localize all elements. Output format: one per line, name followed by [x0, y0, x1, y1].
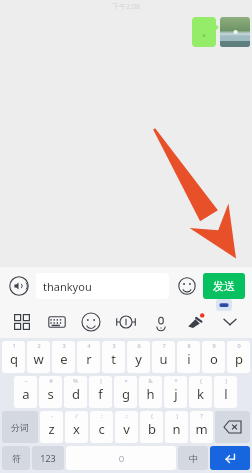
staticText: -	[51, 412, 53, 419]
button[interactable]: ?	[190, 411, 213, 443]
staticText: 9	[212, 342, 216, 349]
button[interactable]: 9	[202, 341, 225, 373]
button[interactable]: Photo message	[220, 17, 250, 47]
button[interactable]: Emoji	[175, 274, 199, 298]
staticText: |	[99, 377, 103, 384]
staticText: (	[200, 377, 202, 384]
staticText: #	[49, 377, 53, 384]
staticText: h	[146, 385, 155, 403]
button[interactable]: ０	[66, 446, 176, 470]
button[interactable]: Text tools	[116, 312, 136, 332]
staticText: 7	[162, 342, 166, 349]
staticText: l	[224, 385, 228, 403]
staticText: y	[135, 350, 142, 368]
button[interactable]: Voice input	[7, 274, 31, 298]
button[interactable]: 符	[2, 446, 30, 470]
button[interactable]: ×	[114, 376, 137, 408]
staticText: i	[187, 350, 191, 368]
button[interactable]: Hide keyboard	[220, 312, 240, 332]
staticText: a	[22, 385, 30, 403]
button[interactable]: Panel	[12, 312, 32, 332]
button[interactable]: 1	[2, 341, 25, 373]
staticText: ×	[124, 377, 128, 384]
button[interactable]: /	[65, 411, 88, 443]
staticText: )	[176, 412, 178, 419]
staticText: r	[86, 350, 92, 368]
staticText: k	[197, 385, 204, 403]
button[interactable]: 0	[227, 341, 250, 373]
staticText: q	[10, 350, 18, 368]
button[interactable]: ~	[14, 376, 37, 408]
button[interactable]: Keyboard	[47, 312, 67, 332]
staticText: ;	[126, 412, 128, 419]
button[interactable]: 发送	[203, 273, 245, 299]
button[interactable]: ;	[115, 411, 138, 443]
button[interactable]: 7	[152, 341, 175, 373]
button[interactable]: -	[40, 411, 63, 443]
staticText: e	[60, 350, 68, 368]
button[interactable]: )	[165, 411, 188, 443]
staticText: (	[151, 412, 153, 419]
staticText: w	[33, 350, 44, 368]
button[interactable]: 分词	[2, 411, 38, 443]
button[interactable]: #	[39, 376, 62, 408]
staticText: 分词	[11, 422, 29, 433]
staticText: n	[172, 420, 181, 438]
button[interactable]: (	[140, 411, 163, 443]
staticText: f	[98, 385, 103, 403]
staticText: j	[174, 385, 178, 403]
staticText: /	[75, 412, 78, 419]
button[interactable]: *	[164, 376, 187, 408]
staticText: thankyou	[43, 279, 92, 294]
button[interactable]: 4	[77, 341, 100, 373]
button[interactable]: |	[89, 376, 112, 408]
button[interactable]: 6	[127, 341, 150, 373]
button[interactable]: 8	[177, 341, 200, 373]
button[interactable]: %	[64, 376, 87, 408]
button[interactable]: thankyou	[36, 273, 169, 299]
staticText: g	[122, 385, 130, 403]
staticText: 4	[87, 342, 91, 349]
staticText: 符	[12, 453, 21, 464]
staticText: 8	[187, 342, 191, 349]
staticText: t	[111, 350, 116, 368]
staticText: &	[148, 377, 153, 384]
button[interactable]: 中	[178, 446, 208, 470]
staticText: ０	[117, 453, 126, 464]
staticText: b	[148, 420, 156, 438]
staticText: :	[101, 412, 103, 419]
staticText: 中	[189, 453, 198, 464]
button[interactable]: Voice effects	[185, 312, 205, 332]
staticText: u	[159, 350, 168, 368]
staticText: 5	[112, 342, 116, 349]
button[interactable]: Backspace	[215, 411, 250, 443]
button[interactable]: 123	[32, 446, 64, 470]
button[interactable]: )	[214, 376, 237, 408]
staticText: %	[73, 377, 78, 384]
button[interactable]: (	[189, 376, 212, 408]
staticText: x	[73, 420, 80, 438]
staticText: o	[210, 350, 218, 368]
button[interactable]: 5	[102, 341, 125, 373]
button[interactable]: 3	[52, 341, 75, 373]
button[interactable]: Emoji panel	[81, 312, 101, 332]
button[interactable]: &	[139, 376, 162, 408]
button[interactable]: Enter	[210, 446, 250, 470]
staticText: s	[47, 385, 54, 403]
button[interactable]: :	[90, 411, 113, 443]
staticText: *	[174, 377, 178, 384]
staticText: )	[225, 377, 227, 384]
button[interactable]: Microphone	[151, 312, 171, 332]
staticText: ?	[200, 412, 203, 419]
button[interactable]: 2	[27, 341, 50, 373]
button[interactable]: Switch keyboard	[216, 299, 232, 311]
staticText: c	[98, 420, 105, 438]
button[interactable]	[192, 17, 216, 47]
staticText: 下午2:08	[112, 2, 140, 12]
staticText: m	[195, 420, 208, 438]
staticText: z	[48, 420, 55, 438]
staticText: 0	[237, 342, 241, 349]
staticText: d	[72, 385, 80, 403]
staticText: 2	[37, 342, 41, 349]
staticText: p	[235, 350, 243, 368]
